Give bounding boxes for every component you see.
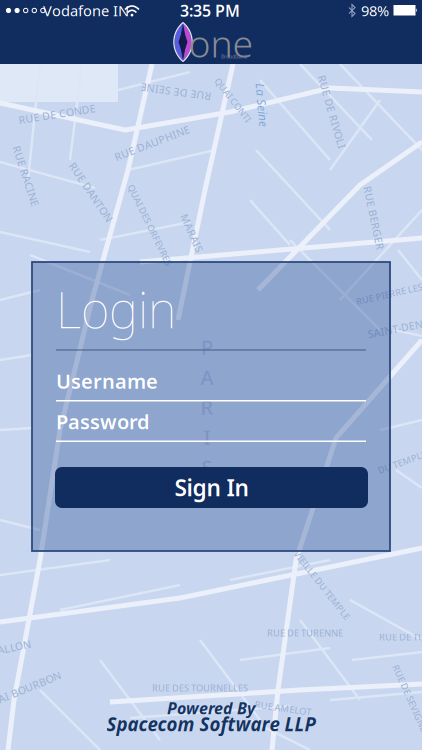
staticText: ALLON xyxy=(0,640,31,654)
staticText: Username xyxy=(56,368,158,394)
button[interactable]: Password xyxy=(56,410,366,442)
staticText: Sign In xyxy=(174,472,248,502)
staticText: RUE DAUPHINE xyxy=(112,136,192,150)
staticText: RUE DE TUR xyxy=(379,631,422,643)
staticText: RUE DE SEVIGNE xyxy=(374,692,422,704)
staticText: Password xyxy=(56,408,150,435)
staticText: SAINT-DENIS xyxy=(367,321,422,335)
staticText: RUE DE CONDE xyxy=(18,107,96,121)
staticText: I xyxy=(203,424,210,450)
staticText: RUE DE SEINE xyxy=(140,85,211,99)
staticText: RUE AMELOT xyxy=(254,702,311,714)
staticText: A xyxy=(200,364,213,390)
staticText: RUE DE RIVOLI xyxy=(294,105,370,119)
staticText: RUE RACINE xyxy=(0,169,57,183)
staticText: QUAI CONTI xyxy=(206,94,259,106)
staticText: QUAI DES ORFEVRES xyxy=(105,219,194,231)
staticText: RUE DES TOURNELLES xyxy=(152,682,248,694)
staticText: VIEILLE DU TEMPLE xyxy=(279,579,364,591)
button[interactable]: Sign In xyxy=(55,467,368,508)
staticText: RUE DANTON xyxy=(56,185,125,199)
staticText: Spacecom Software LLP xyxy=(106,712,315,736)
button[interactable]: Username xyxy=(56,370,366,402)
staticText: S xyxy=(201,454,212,480)
staticText: P xyxy=(201,334,213,360)
staticText: Powered By xyxy=(167,697,255,719)
staticText: QUAI BOURBON xyxy=(0,683,63,697)
staticText: Broadband xyxy=(221,53,247,60)
staticText: RUE PIERRE LESCOT xyxy=(355,286,422,298)
staticText: 3:35 PM xyxy=(180,0,240,21)
staticText: Login xyxy=(56,276,176,342)
staticText: La Seine xyxy=(240,97,284,113)
staticText: RUE DE TURENNE xyxy=(267,627,343,639)
staticText: RUE BERGER xyxy=(341,211,406,225)
staticText: Vodafone IN xyxy=(43,1,129,20)
staticText: DU TEMPLE xyxy=(376,456,422,468)
staticText: MARAIS xyxy=(171,226,212,240)
staticText: R xyxy=(200,394,213,420)
staticText: 98% xyxy=(361,1,389,20)
staticText: one xyxy=(188,18,253,68)
